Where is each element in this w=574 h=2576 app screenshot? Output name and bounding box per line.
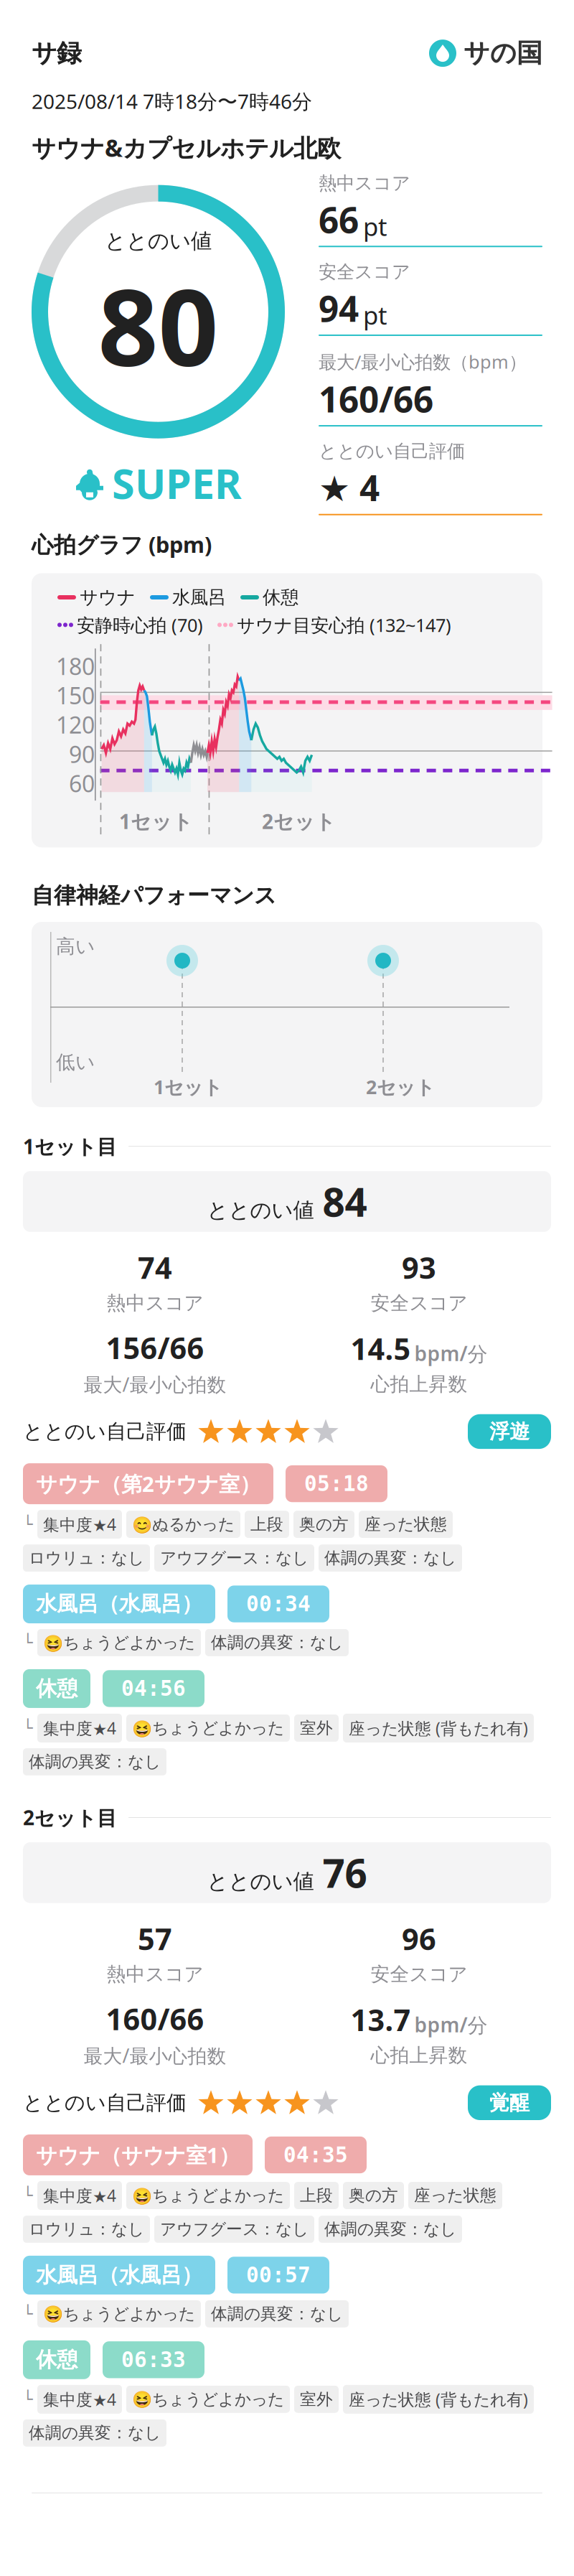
staticText: 集中度★4 — [43, 2185, 116, 2206]
staticText: 90 — [69, 739, 95, 769]
staticText: 水風呂（水風呂） — [36, 1591, 202, 1617]
staticText: 休憩 — [36, 1676, 77, 1701]
staticText: 120 — [56, 709, 95, 740]
staticText: 04:35 — [283, 2143, 348, 2167]
staticText: 13.7 — [350, 2000, 411, 2039]
staticText: └ — [23, 1719, 33, 1737]
staticText: 1セット — [154, 1074, 222, 1099]
staticText: ととのい値 — [207, 1197, 314, 1223]
staticText: 心拍グラフ (bpm) — [32, 530, 212, 559]
staticText: ととのい値 — [207, 1869, 314, 1894]
staticText: 1セット目 — [23, 1133, 117, 1160]
staticText: サウナ — [80, 586, 136, 608]
staticText: ととのい値 — [105, 228, 212, 254]
staticText: 心拍上昇数 — [371, 1373, 467, 1396]
staticText: ★ 4 — [319, 464, 380, 511]
staticText: bpm/分 — [414, 1340, 488, 1367]
staticText: 😆ちょうどよかった — [132, 1718, 284, 1738]
staticText: 180 — [56, 651, 95, 681]
staticText: 体調の異変：なし — [29, 1752, 161, 1772]
staticText: 94 — [319, 285, 359, 332]
staticText: サウナ目安心拍 (132~147) — [237, 613, 451, 637]
staticText: └ — [23, 2305, 33, 2323]
staticText: 2セット目 — [23, 1804, 117, 1831]
staticText: 休憩 — [36, 2347, 77, 2373]
staticText: pt — [363, 210, 387, 243]
staticText: 00:34 — [246, 1592, 311, 1616]
staticText: 57 — [138, 1919, 172, 1958]
staticText: 66 — [319, 196, 359, 243]
staticText: └ — [23, 2186, 33, 2205]
staticText: サ録 — [32, 38, 82, 68]
staticText: 安静時心拍 (70) — [77, 613, 203, 637]
staticText: 80 — [98, 255, 218, 395]
staticText: 室外 — [300, 2389, 333, 2409]
staticText: bpm/分 — [414, 2011, 488, 2038]
staticText: サウナ&カプセルホテル北欧 — [32, 132, 341, 163]
staticText: 座った状態 — [364, 1514, 447, 1534]
staticText: 安全スコア — [371, 1963, 467, 1986]
staticText: サウナ（第2サウナ室） — [36, 1470, 260, 1498]
staticText: 水風呂 — [172, 586, 226, 608]
staticText: pt — [363, 299, 387, 332]
staticText: 低い — [56, 1051, 95, 1074]
staticText: 座った状態 (背もたれ有) — [349, 1717, 528, 1739]
staticText: 74 — [138, 1248, 172, 1287]
staticText: 熱中スコア — [107, 1963, 203, 1986]
staticText: 😆ちょうどよかった — [132, 2389, 284, 2409]
staticText: 😆ちょうどよかった — [43, 1633, 195, 1653]
staticText: ととのい自己評価 — [23, 2090, 187, 2115]
staticText: 14.5 — [350, 1329, 411, 1368]
staticText: 集中度★4 — [43, 2388, 116, 2410]
staticText: 座った状態 — [414, 2186, 497, 2205]
staticText: ロウリュ：なし — [29, 1548, 144, 1568]
staticText: 😆ちょうどよかった — [132, 2186, 284, 2205]
staticText: SUPER — [112, 456, 242, 510]
staticText: 😊ぬるかった — [132, 1514, 235, 1534]
staticText: 上段 — [250, 1514, 283, 1534]
staticText: 浮遊 — [489, 1419, 530, 1444]
staticText: 😆ちょうどよかった — [43, 2304, 195, 2324]
staticText: 最大/最小心拍数 — [84, 1371, 226, 1397]
staticText: 体調の異変：なし — [324, 2219, 456, 2239]
staticText: 集中度★4 — [43, 1717, 116, 1739]
staticText: アウフグース：なし — [160, 1548, 309, 1568]
staticText: 座った状態 (背もたれ有) — [349, 2388, 528, 2410]
staticText: ロウリュ：なし — [29, 2219, 144, 2239]
staticText: 06:33 — [121, 2348, 186, 2372]
staticText: 熱中スコア — [107, 1291, 203, 1315]
staticText: 集中度★4 — [43, 1514, 116, 1535]
staticText: 体調の異変：なし — [29, 2423, 161, 2443]
staticText: 体調の異変：なし — [324, 1548, 456, 1568]
staticText: 安全スコア — [371, 1291, 467, 1315]
staticText: 自律神経パフォーマンス — [32, 882, 276, 909]
staticText: 上段 — [300, 2186, 333, 2205]
staticText: 熱中スコア — [319, 172, 410, 194]
staticText: 休憩 — [263, 586, 298, 608]
staticText: 150 — [56, 680, 95, 711]
staticText: 93 — [402, 1248, 436, 1287]
staticText: 体調の異変：なし — [211, 2304, 343, 2324]
staticText: 160/66 — [319, 375, 433, 422]
staticText: 覚醒 — [489, 2090, 530, 2115]
staticText: 60 — [69, 768, 95, 799]
staticText: 96 — [402, 1919, 436, 1958]
staticText: 76 — [323, 1847, 367, 1899]
staticText: 高い — [56, 935, 95, 958]
staticText: 2025/08/14 7時18分〜7時46分 — [32, 88, 312, 114]
staticText: 最大/最小心拍数 — [84, 2043, 226, 2068]
staticText: ととのい自己評価 — [23, 1419, 187, 1444]
staticText: 安全スコア — [319, 261, 410, 283]
staticText: サウナ（サウナ室1） — [36, 2141, 240, 2169]
staticText: ととのい自己評価 — [319, 440, 465, 463]
staticText: 最大/最小心拍数（bpm） — [319, 350, 527, 374]
staticText: 心拍上昇数 — [371, 2044, 467, 2067]
staticText: 体調の異変：なし — [211, 1633, 343, 1653]
staticText: └ — [23, 1633, 33, 1652]
staticText: └ — [23, 2390, 33, 2409]
staticText: 04:56 — [121, 1677, 186, 1701]
staticText: 160/66 — [106, 1999, 204, 2038]
staticText: 2セット — [366, 1074, 435, 1099]
staticText: 室外 — [300, 1718, 333, 1738]
staticText: 156/66 — [106, 1328, 204, 1367]
